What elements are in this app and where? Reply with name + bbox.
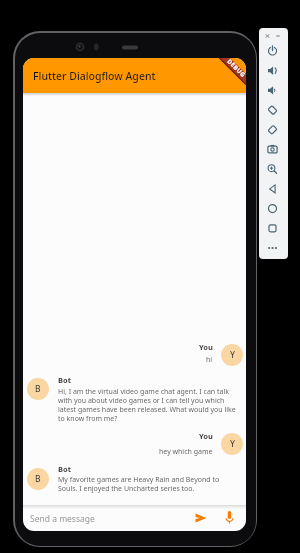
button[interactable]: [262, 160, 285, 178]
staticText: hey which game: [159, 447, 213, 457]
staticText: with you about video games or I can tell…: [58, 396, 225, 405]
staticText: to know from me?: [58, 414, 118, 423]
button[interactable]: [262, 239, 285, 257]
button[interactable]: [262, 101, 285, 119]
staticText: hi: [206, 355, 213, 365]
staticText: B: [35, 383, 41, 395]
staticText: Flutter Dialogflow Agent: [33, 69, 156, 83]
button[interactable]: [262, 42, 285, 60]
button[interactable]: [262, 200, 285, 218]
button[interactable]: [262, 81, 285, 99]
staticText: You: [199, 342, 213, 352]
staticText: Souls. I enjoyed the Uncharted series to…: [58, 484, 195, 493]
staticText: DEBUG: [225, 58, 246, 79]
button[interactable]: [262, 121, 285, 139]
staticText: Hi, I am the virtual video game chat age…: [58, 387, 229, 396]
staticText: latest games have been released. What wo…: [58, 405, 236, 414]
staticText: B: [35, 473, 41, 485]
button[interactable]: [189, 507, 213, 529]
button[interactable]: [262, 62, 285, 80]
button[interactable]: [262, 180, 285, 198]
button[interactable]: [217, 507, 242, 529]
staticText: You: [199, 431, 213, 441]
staticText: Y: [230, 438, 235, 450]
staticText: Send a message: [30, 513, 95, 525]
staticText: Y: [230, 349, 235, 361]
button[interactable]: [262, 219, 285, 237]
staticText: Bot: [58, 375, 71, 385]
staticText: My favorite games are Heavy Rain and Bey…: [58, 475, 220, 484]
button[interactable]: [262, 141, 285, 159]
button[interactable]: Send a message: [23, 506, 246, 531]
staticText: Bot: [58, 464, 71, 474]
